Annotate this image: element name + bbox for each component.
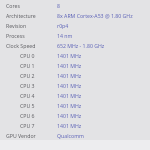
button[interactable]: CPU 7 bbox=[0, 120, 150, 130]
staticText: CPU 5 bbox=[20, 102, 35, 109]
staticText: 1401 MHz bbox=[57, 82, 82, 89]
staticText: CPU 0 bbox=[20, 52, 35, 59]
staticText: CPU 4 bbox=[20, 92, 35, 99]
staticText: Qualcomm bbox=[57, 132, 84, 139]
button[interactable]: CPU 4 bbox=[0, 90, 150, 100]
staticText: CPU 2 bbox=[20, 72, 35, 79]
staticText: r0p4 bbox=[57, 22, 69, 29]
staticText: 8 bbox=[57, 2, 60, 9]
button[interactable]: Architecture bbox=[0, 10, 150, 20]
button[interactable]: CPU 3 bbox=[0, 80, 150, 90]
staticText: CPU 1 bbox=[20, 62, 35, 69]
staticText: Clock Speed bbox=[6, 42, 36, 49]
staticText: GPU Vendor bbox=[6, 132, 36, 139]
staticText: 1401 MHz bbox=[57, 122, 82, 129]
staticText: 1401 MHz bbox=[57, 62, 82, 69]
staticText: CPU 6 bbox=[20, 112, 35, 119]
button[interactable]: Clock Speed bbox=[0, 40, 150, 50]
staticText: CPU 3 bbox=[20, 82, 35, 89]
staticText: 652 MHz - 1.80 GHz bbox=[57, 42, 105, 49]
button[interactable]: CPU 0 bbox=[0, 50, 150, 60]
staticText: 1401 MHz bbox=[57, 52, 82, 59]
staticText: 1401 MHz bbox=[57, 102, 82, 109]
staticText: Process bbox=[6, 32, 25, 39]
staticText: 14 nm bbox=[57, 32, 73, 39]
button[interactable]: CPU 2 bbox=[0, 70, 150, 80]
button[interactable]: CPU 5 bbox=[0, 100, 150, 110]
staticText: Revision bbox=[6, 22, 27, 29]
staticText: CPU 7 bbox=[20, 122, 35, 129]
button[interactable]: GPU Vendor bbox=[0, 130, 150, 140]
staticText: Cores bbox=[6, 2, 20, 9]
staticText: Architecture bbox=[6, 12, 36, 19]
staticText: 1401 MHz bbox=[57, 72, 82, 79]
staticText: 1401 MHz bbox=[57, 112, 82, 119]
button[interactable]: CPU 1 bbox=[0, 60, 150, 70]
staticText: 1401 MHz bbox=[57, 92, 82, 99]
button[interactable]: Cores bbox=[0, 0, 150, 10]
button[interactable]: CPU 6 bbox=[0, 110, 150, 120]
button[interactable]: Process bbox=[0, 30, 150, 40]
staticText: 8x ARM Cortex-A53 @ 1.80 GHz bbox=[57, 12, 133, 19]
button[interactable]: Revision bbox=[0, 20, 150, 30]
